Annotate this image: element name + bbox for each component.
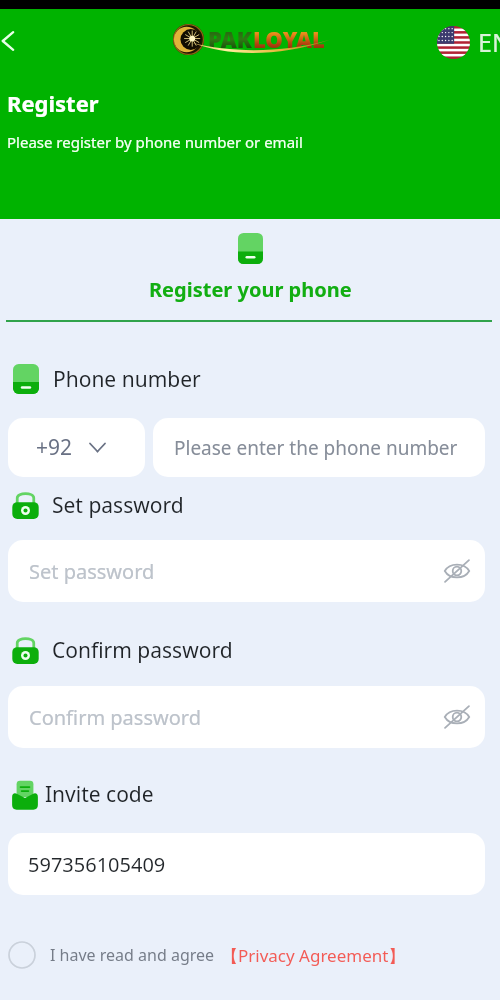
staticText: Invite code <box>45 780 154 809</box>
staticText: LOYAL <box>253 24 325 54</box>
staticText: Phone number <box>53 365 201 394</box>
button[interactable]: Back <box>0 17 32 65</box>
button[interactable]: Register your phone <box>149 233 352 303</box>
button[interactable]: Language English <box>437 25 500 59</box>
staticText: Please register by phone number or email <box>7 132 303 152</box>
staticText: EN <box>478 25 500 59</box>
button[interactable]: Please enter the phone number <box>153 418 485 477</box>
staticText: Confirm password <box>52 636 233 665</box>
button[interactable]: Set password <box>8 540 485 602</box>
staticText: +92 <box>36 433 73 462</box>
staticText: Register <box>7 88 99 118</box>
staticText: 597356105409 <box>28 851 166 878</box>
button[interactable]: Country code +92 <box>8 418 145 477</box>
button[interactable]: 597356105409 <box>8 833 485 895</box>
staticText: Set password <box>52 491 184 520</box>
staticText: PAK <box>208 24 252 54</box>
button[interactable]: 【Privacy Agreement】 <box>221 944 406 967</box>
button[interactable]: Confirm password <box>8 686 485 748</box>
button[interactable]: Show password <box>440 700 474 734</box>
staticText: Please enter the phone number <box>174 435 458 461</box>
button[interactable]: PakLoyal logo <box>173 19 333 59</box>
button[interactable]: Agree to privacy agreement <box>7 940 37 970</box>
staticText: Set password <box>29 558 155 585</box>
staticText: I have read and agree <box>50 944 215 966</box>
staticText: Register your phone <box>149 276 352 303</box>
staticText: Confirm password <box>29 704 201 731</box>
button[interactable]: Show password <box>440 554 474 588</box>
